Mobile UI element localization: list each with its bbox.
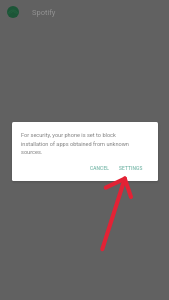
button[interactable]: SETTINGS	[116, 164, 146, 174]
staticText: For security, your phone is set to block…	[21, 132, 133, 155]
button[interactable]: Spotify app icon	[0, 0, 169, 24]
staticText: CANCEL	[90, 166, 110, 172]
staticText: SETTINGS	[119, 166, 143, 172]
other: Arrow pointing to Settings	[0, 0, 169, 300]
other: Spotify app icon	[7, 6, 19, 18]
button[interactable]: CANCEL	[87, 164, 116, 174]
staticText: Spotify	[32, 8, 56, 17]
